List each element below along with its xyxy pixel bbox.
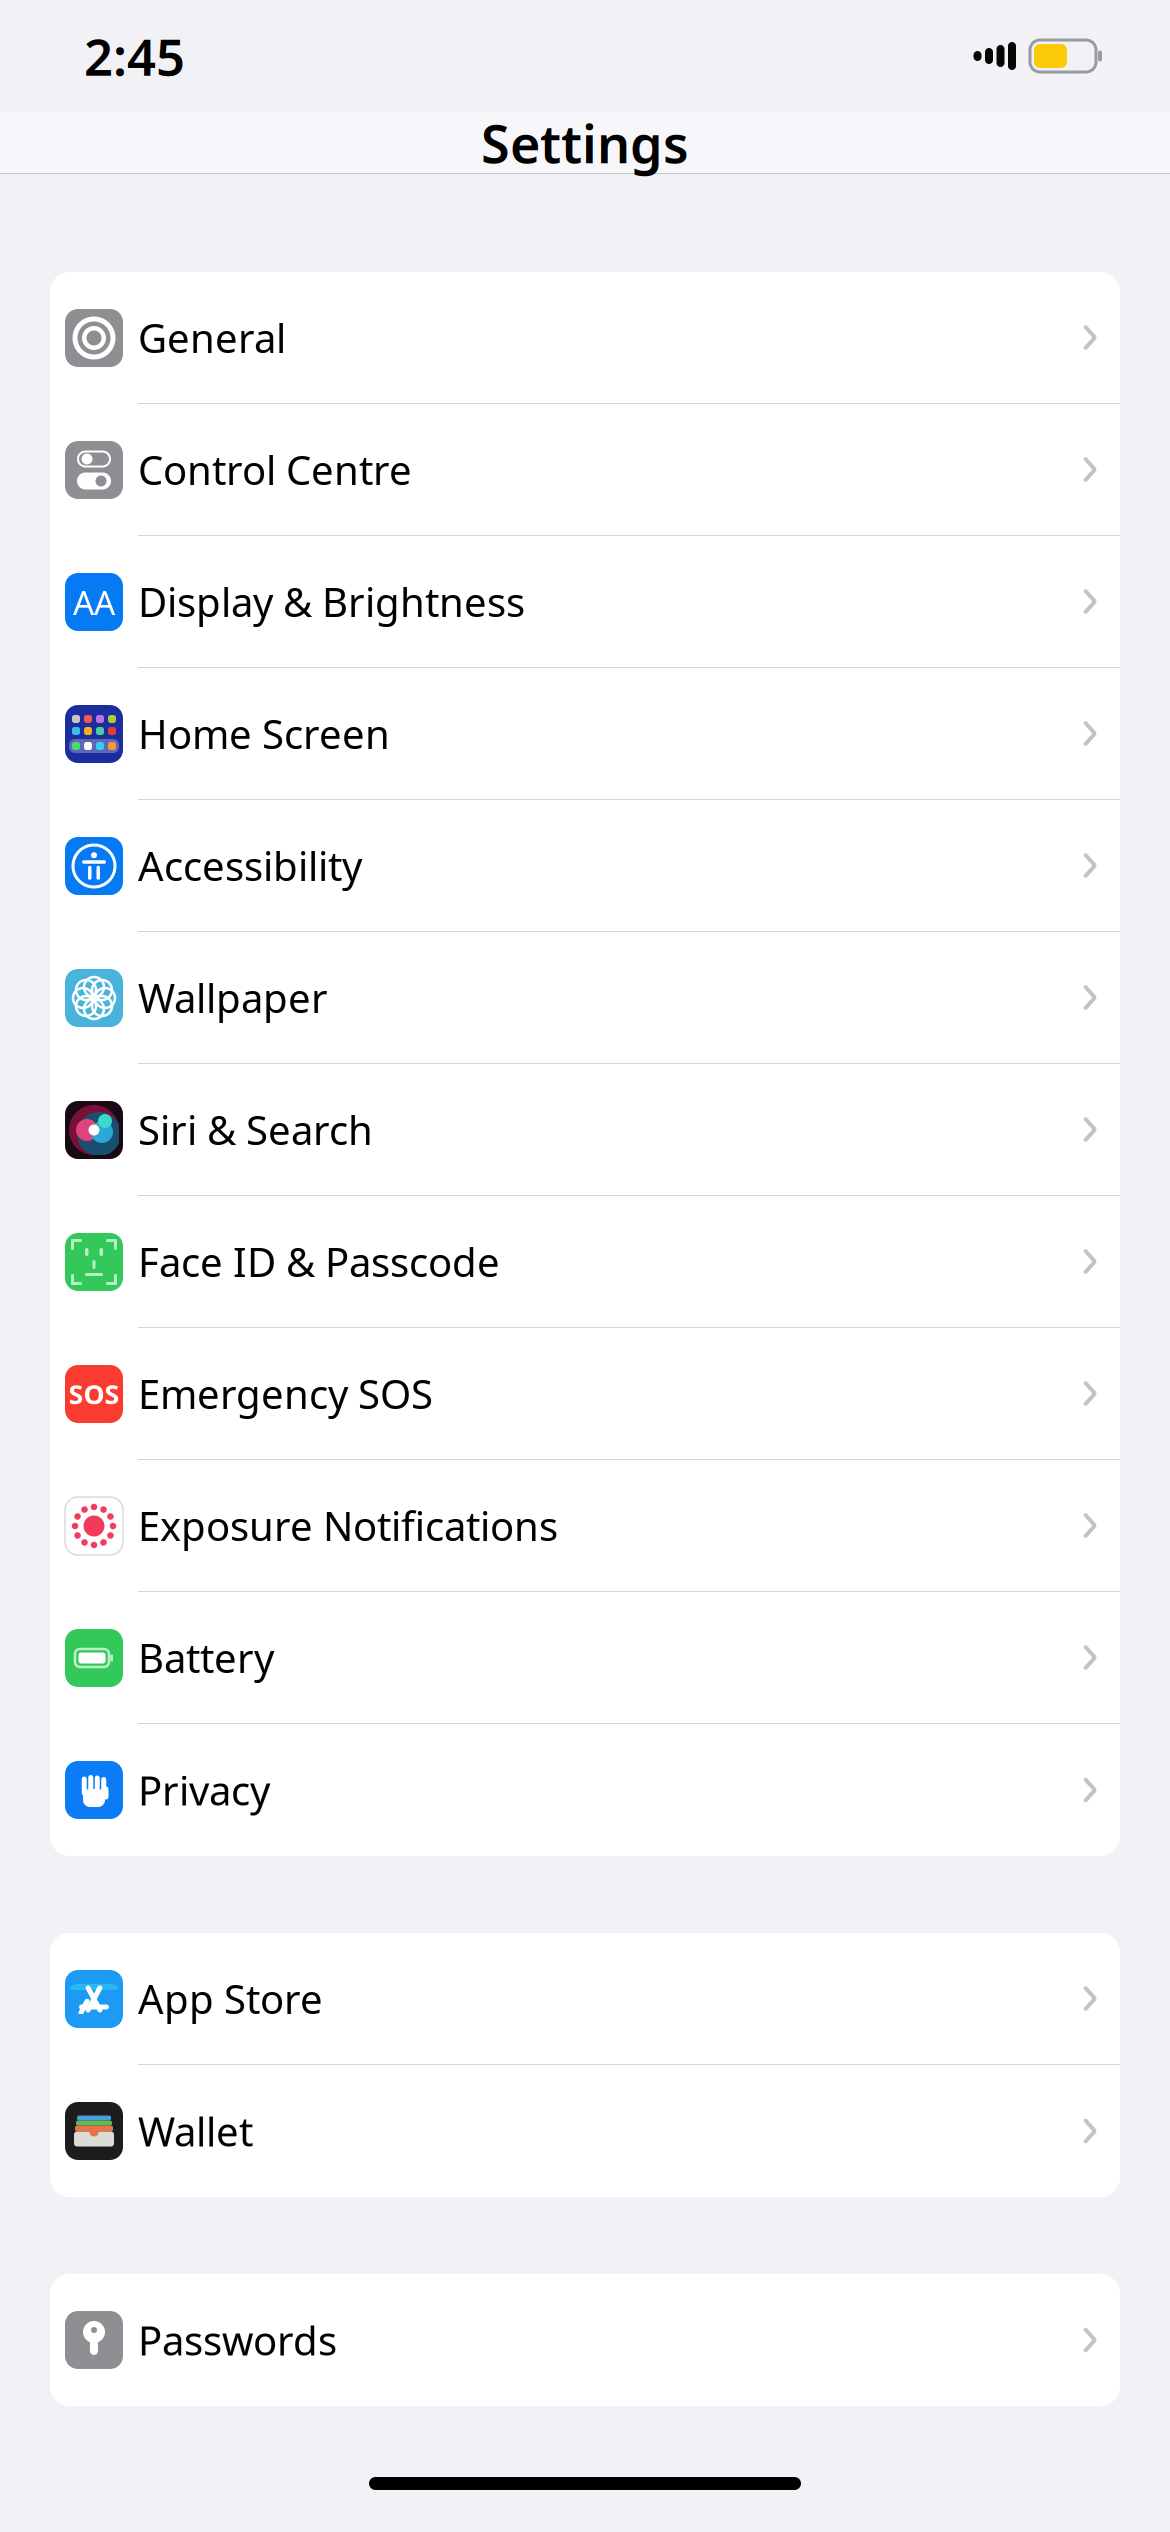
button[interactable]: Passwords bbox=[50, 2274, 1120, 2406]
staticText: Passwords bbox=[138, 2313, 337, 2366]
staticText: Home Screen bbox=[138, 707, 390, 760]
button[interactable]: Privacy bbox=[50, 1724, 1120, 1856]
button[interactable]: AA bbox=[50, 536, 1120, 668]
staticText: Display & Brightness bbox=[138, 575, 525, 628]
staticText: Privacy bbox=[138, 1763, 270, 1816]
button[interactable]: General bbox=[50, 272, 1120, 404]
button[interactable]: Control Centre bbox=[50, 404, 1120, 536]
button[interactable]: Exposure Notifications bbox=[50, 1460, 1120, 1592]
button[interactable]: Battery bbox=[50, 1592, 1120, 1724]
button[interactable]: SOS bbox=[50, 1328, 1120, 1460]
staticText: SOS bbox=[68, 1376, 119, 1412]
staticText: 2:45 bbox=[84, 22, 185, 90]
staticText: Battery bbox=[138, 1631, 274, 1684]
staticText: Accessibility bbox=[138, 839, 362, 892]
staticText: Exposure Notifications bbox=[138, 1499, 558, 1552]
button[interactable]: Wallet bbox=[50, 2065, 1120, 2197]
staticText: Face ID & Passcode bbox=[138, 1235, 500, 1288]
button[interactable]: Home Screen bbox=[50, 668, 1120, 800]
staticText: App Store bbox=[138, 1972, 323, 2025]
button[interactable]: App Store bbox=[50, 1933, 1120, 2065]
staticText: General bbox=[138, 311, 286, 364]
button[interactable]: Accessibility bbox=[50, 800, 1120, 932]
staticText: Wallpaper bbox=[138, 971, 328, 1024]
button[interactable]: Wallpaper bbox=[50, 932, 1120, 1064]
staticText: Emergency SOS bbox=[138, 1367, 433, 1420]
staticText: Control Centre bbox=[138, 443, 412, 496]
staticText: Settings bbox=[481, 108, 689, 178]
staticText: AA bbox=[73, 580, 115, 624]
button[interactable]: Siri & Search bbox=[50, 1064, 1120, 1196]
staticText: Siri & Search bbox=[138, 1103, 373, 1156]
staticText: Wallet bbox=[138, 2104, 253, 2157]
button[interactable]: Face ID & Passcode bbox=[50, 1196, 1120, 1328]
